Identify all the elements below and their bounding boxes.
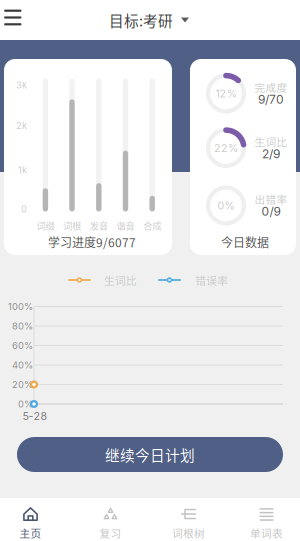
button[interactable]: 复习 — [73, 502, 148, 541]
staticText: 今日数据 — [221, 233, 269, 251]
staticText: 5-28 — [22, 409, 47, 422]
staticText: 目标:考研 — [109, 9, 173, 31]
staticText: 继续今日计划 — [105, 444, 195, 465]
staticText: 词根 — [63, 219, 81, 232]
staticText: 0 — [21, 203, 27, 215]
staticText: 9/70 — [258, 92, 284, 107]
button[interactable]: 词根树 — [151, 502, 226, 541]
button[interactable]: Menu — [0, 0, 30, 37]
staticText: 生词比 — [104, 272, 137, 288]
staticText: 复习 — [99, 525, 121, 540]
staticText: 错误率 — [195, 272, 228, 288]
staticText: 3k — [16, 79, 27, 91]
staticText: 单词表 — [250, 525, 283, 540]
staticText: 12% — [215, 87, 236, 100]
staticText: 合成 — [143, 219, 161, 232]
button[interactable]: 主页 — [0, 502, 68, 541]
staticText: 0% — [18, 398, 33, 410]
staticText: 完成度 — [254, 79, 287, 95]
staticText: 60% — [12, 340, 33, 351]
staticText: 学习进度9/6077 — [48, 233, 136, 251]
staticText: 2k — [16, 120, 27, 131]
staticText: 主页 — [19, 525, 41, 540]
staticText: 40% — [12, 359, 33, 371]
button[interactable]: 继续今日计划 — [17, 437, 283, 472]
staticText: 1k — [18, 164, 27, 176]
staticText: 生词比 — [254, 134, 287, 149]
staticText: 发音 — [90, 219, 108, 232]
button[interactable]: 单词表 — [229, 502, 300, 541]
staticText: 2/9 — [262, 147, 280, 161]
staticText: 0% — [217, 199, 234, 212]
staticText: 出错率 — [254, 191, 287, 207]
staticText: 词缀 — [36, 219, 54, 232]
staticText: 词根树 — [172, 525, 205, 540]
staticText: 谐音 — [116, 219, 134, 232]
staticText: 100% — [8, 301, 33, 312]
staticText: 0/9 — [261, 204, 280, 219]
staticText: 20% — [12, 379, 33, 390]
staticText: 80% — [12, 320, 33, 332]
staticText: 22% — [214, 141, 238, 154]
button[interactable]: 目标:考研 — [101, 0, 197, 40]
